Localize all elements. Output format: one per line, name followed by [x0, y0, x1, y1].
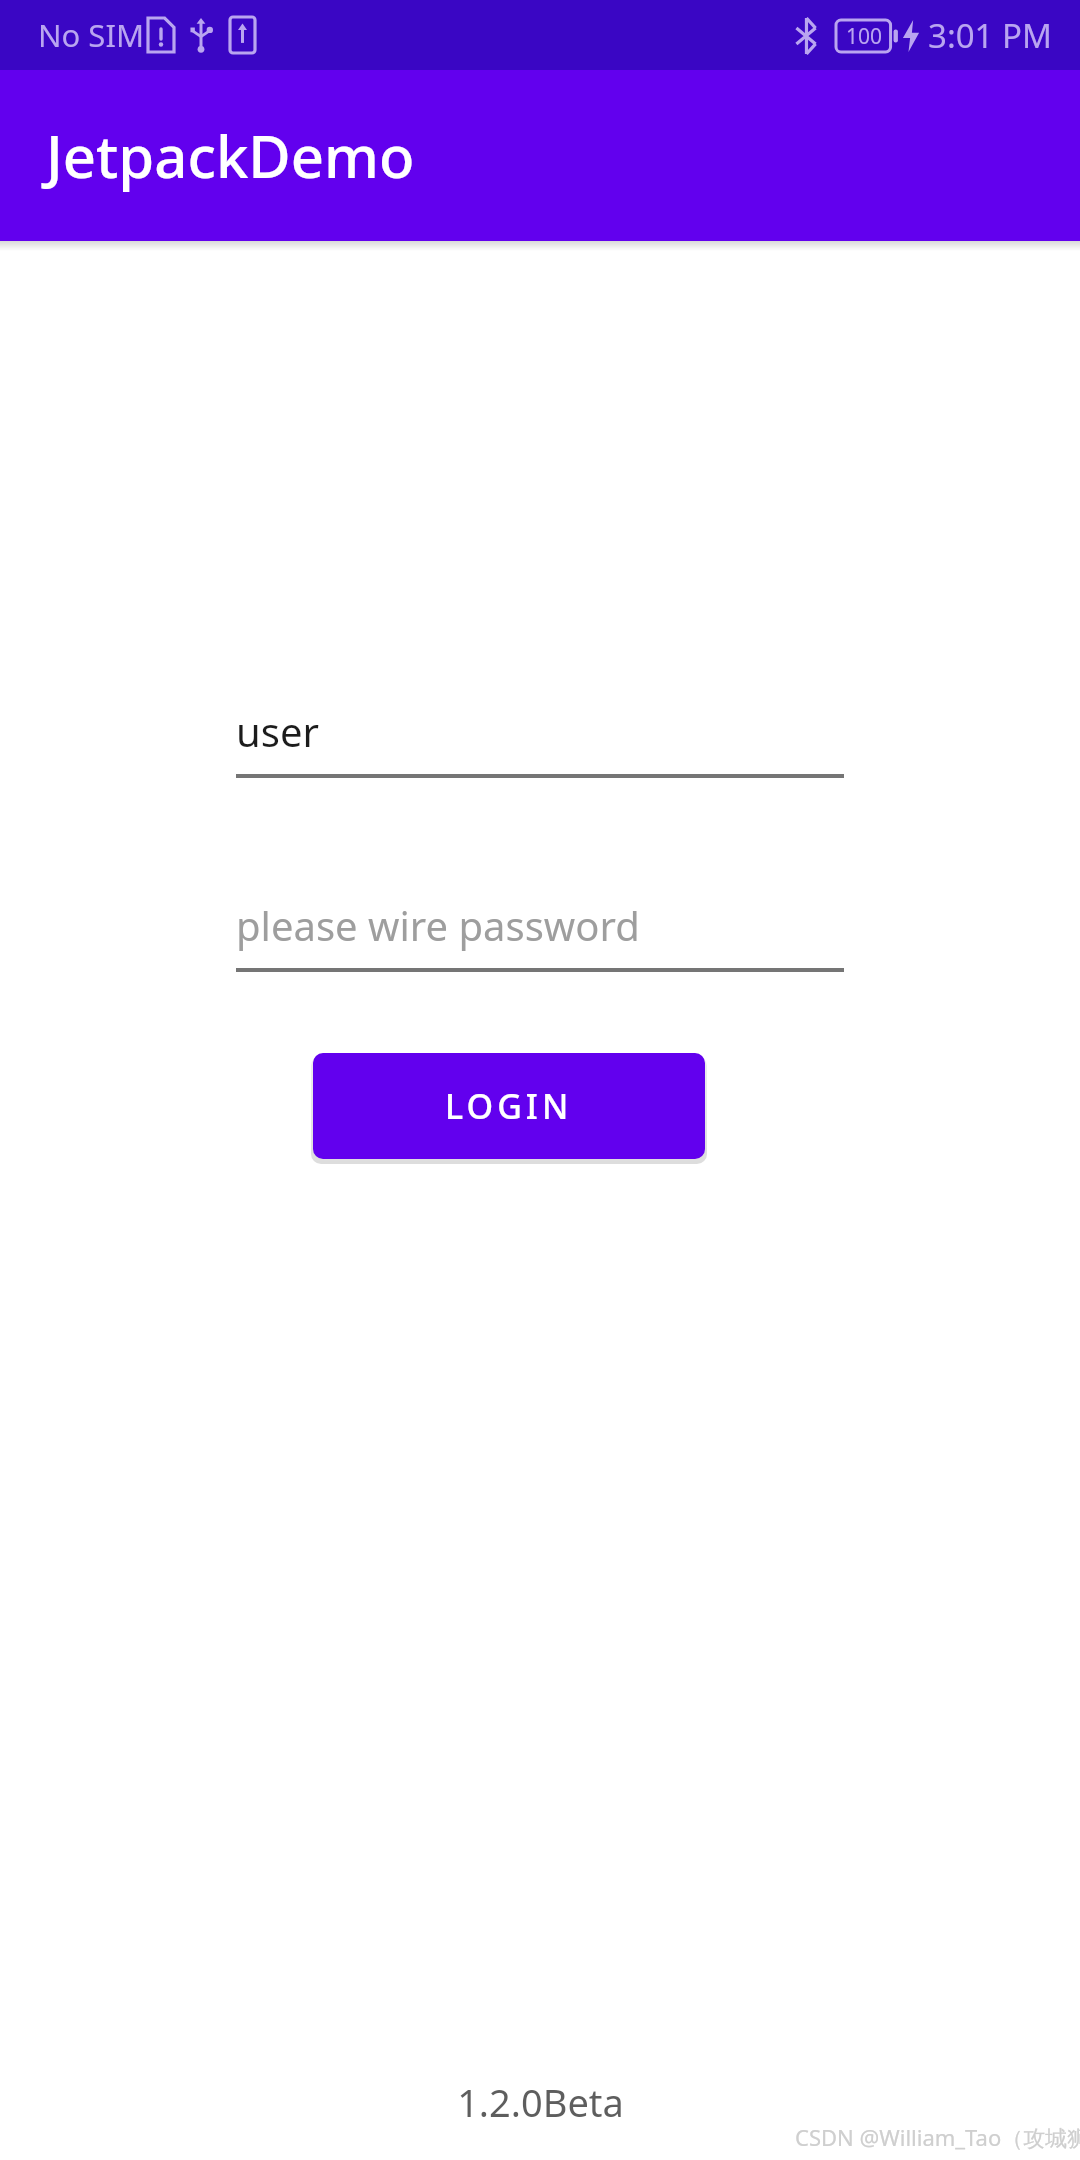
button[interactable]: LOGIN — [313, 1053, 705, 1159]
staticText: No SIM — [38, 14, 145, 56]
staticText: user — [236, 704, 319, 758]
other: Battery 100 percent — [836, 20, 898, 52]
staticText: please wire password — [236, 898, 640, 952]
other: Charging — [902, 20, 920, 52]
button[interactable]: user — [236, 700, 844, 778]
staticText: JetpackDemo — [46, 116, 415, 195]
other: No SIM card — [148, 18, 174, 52]
staticText: 3:01 PM — [928, 13, 1052, 58]
staticText: CSDN @William_Tao（攻城狮） — [795, 2122, 1080, 2152]
button[interactable]: please wire password — [236, 894, 844, 972]
other: Bluetooth on — [794, 18, 818, 54]
other: USB connected — [190, 18, 212, 52]
staticText: 100 — [846, 22, 883, 51]
other: Screen sharing — [230, 17, 255, 53]
staticText: 1.2.0Beta — [457, 2076, 624, 2128]
staticText: LOGIN — [445, 1083, 573, 1129]
